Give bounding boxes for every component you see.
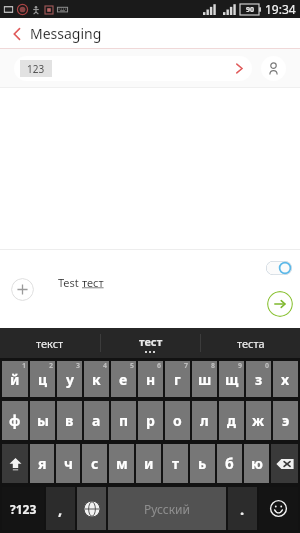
button[interactable]: ю (244, 444, 269, 483)
staticText: текст (36, 336, 64, 351)
staticText: о (173, 411, 182, 430)
button[interactable]: с (82, 444, 107, 483)
button[interactable]: Backspace (271, 444, 298, 483)
staticText: ж (252, 411, 265, 430)
staticText: ?123 (10, 501, 37, 517)
staticText: 0 (265, 361, 270, 371)
staticText: ц (38, 370, 48, 389)
button[interactable]: э (273, 401, 298, 440)
staticText: н (146, 370, 156, 389)
staticText: . (240, 499, 245, 519)
staticText: е (119, 370, 128, 389)
button[interactable]: Messaging (0, 20, 115, 47)
staticText: х (281, 370, 290, 389)
button[interactable]: щ (219, 361, 244, 397)
staticText: Русский (144, 501, 190, 517)
staticText: и (144, 454, 154, 473)
staticText: с (91, 454, 99, 473)
staticText: д (227, 411, 236, 430)
button[interactable]: ш (192, 361, 217, 397)
staticText: 5 (130, 361, 135, 371)
staticText: ш (198, 370, 212, 389)
staticText: щ (225, 370, 239, 389)
button[interactable]: х (273, 361, 298, 397)
button[interactable]: ы (30, 401, 55, 440)
staticText: г (174, 370, 181, 389)
staticText: , (58, 499, 63, 519)
button[interactable]: , (46, 487, 75, 530)
button[interactable]: Shift (2, 444, 28, 483)
staticText: я (38, 454, 47, 473)
button[interactable]: я (30, 444, 54, 483)
button[interactable]: и (136, 444, 161, 483)
button[interactable]: з (246, 361, 271, 397)
button[interactable]: теста (201, 328, 300, 358)
staticText: 1 (22, 361, 27, 371)
staticText: ь (198, 454, 207, 473)
button[interactable]: е (111, 361, 136, 397)
button[interactable]: ж (246, 401, 271, 440)
button[interactable]: ч (56, 444, 80, 483)
button[interactable]: Add contact (261, 56, 286, 81)
staticText: 123 (27, 62, 45, 76)
button[interactable]: у (57, 361, 82, 397)
button[interactable]: Send (267, 291, 293, 317)
staticText: т (172, 454, 180, 473)
button[interactable]: т (163, 444, 188, 483)
button[interactable]: Русский (108, 487, 226, 530)
button[interactable]: н (138, 361, 163, 397)
staticText: 4 (103, 361, 108, 371)
staticText: а (92, 411, 101, 430)
staticText: Messaging (30, 24, 102, 43)
button[interactable]: Toggle SMS mode (266, 261, 292, 275)
button[interactable]: б (217, 444, 242, 483)
staticText: й (10, 370, 20, 389)
button[interactable]: а (84, 401, 109, 440)
button[interactable]: к (84, 361, 109, 397)
staticText: теста (237, 336, 265, 351)
staticText: у (66, 370, 74, 389)
button[interactable]: 123 (14, 56, 252, 81)
button[interactable]: в (57, 401, 82, 440)
button[interactable]: Change language (77, 487, 106, 530)
staticText: ч (64, 454, 73, 473)
button[interactable]: текст (0, 328, 100, 358)
staticText: б (225, 454, 234, 473)
staticText: 19:34 (265, 1, 296, 17)
staticText: 7 (184, 361, 189, 371)
staticText: тест (82, 275, 104, 290)
button[interactable]: Add attachment (11, 278, 34, 301)
button[interactable]: й (2, 361, 28, 397)
button[interactable]: Emoji (259, 487, 298, 530)
button[interactable]: ц (30, 361, 55, 397)
staticText: к (92, 370, 101, 389)
staticText: ы (37, 411, 49, 430)
button[interactable]: ь (190, 444, 215, 483)
staticText: 90 (246, 5, 255, 15)
button[interactable]: п (111, 401, 136, 440)
staticText: э (282, 411, 290, 430)
staticText: 3 (76, 361, 81, 371)
button[interactable]: д (219, 401, 244, 440)
staticText: р (146, 411, 155, 430)
staticText: в (65, 411, 74, 430)
button[interactable]: . (228, 487, 257, 530)
staticText: ю (251, 454, 263, 473)
staticText: 8 (211, 361, 216, 371)
button[interactable]: м (109, 444, 134, 483)
button[interactable]: Test (49, 258, 252, 311)
staticText: Test (58, 275, 82, 290)
staticText: л (200, 411, 209, 430)
staticText: п (119, 411, 129, 430)
button[interactable]: тест (101, 328, 200, 358)
staticText: 6 (157, 361, 162, 371)
button[interactable]: ?123 (2, 487, 44, 530)
staticText: ф (9, 411, 21, 430)
staticText: тест (139, 334, 163, 349)
button[interactable]: ф (2, 401, 28, 440)
button[interactable]: л (192, 401, 217, 440)
staticText: 9 (238, 361, 243, 371)
button[interactable]: г (165, 361, 190, 397)
button[interactable]: р (138, 401, 163, 440)
button[interactable]: о (165, 401, 190, 440)
